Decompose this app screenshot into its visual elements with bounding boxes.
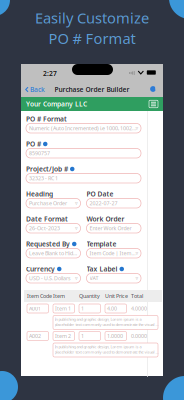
staticText: Enter Work Order xyxy=(89,225,131,232)
staticText: Template xyxy=(86,240,116,248)
staticText: PO Date xyxy=(86,190,113,198)
staticText: Numeric (Auto Incremented) i.e 1000, 100… xyxy=(29,125,135,132)
staticText: ▿ xyxy=(75,225,78,231)
button[interactable]: 32323 - RC 1 xyxy=(26,173,141,183)
staticText: 0.0000 xyxy=(131,332,147,340)
button[interactable]: Leave Blank to Hide from xyxy=(26,248,80,258)
staticText: PO # xyxy=(26,140,41,148)
staticText: Project/Job # xyxy=(26,165,68,173)
staticText: Easily Customize xyxy=(35,8,149,27)
staticText: 2:27 xyxy=(43,69,57,78)
staticText: Heading xyxy=(26,190,53,198)
staticText: ▿ xyxy=(135,250,138,256)
button[interactable]: 8590757 xyxy=(26,148,141,158)
staticText: ▿ xyxy=(75,275,78,281)
staticText: Work Order xyxy=(86,215,124,223)
staticText: A002 xyxy=(29,332,41,340)
button[interactable]: Enter Work Order xyxy=(86,223,141,233)
staticText: Item Code | Item | Quant xyxy=(89,250,135,257)
staticText: Quantity xyxy=(79,292,100,300)
button[interactable]: Purchase Order xyxy=(26,198,80,208)
staticText: 4.0000 xyxy=(131,305,147,312)
staticText: PO # Format xyxy=(48,28,135,48)
staticText: 4.00 xyxy=(107,305,117,312)
staticText: ▿ xyxy=(135,125,138,131)
staticText: 1.0000 xyxy=(107,332,123,340)
button[interactable]: Refresh xyxy=(149,85,157,93)
staticText: Tax Label xyxy=(86,265,117,273)
staticText: Total xyxy=(131,292,143,300)
staticText: 1 xyxy=(81,332,84,340)
staticText: Purchase Order xyxy=(29,200,67,207)
button[interactable]: Item Code | Item | Quant xyxy=(86,248,141,258)
staticText: In publishing and graphic design, Lorem … xyxy=(54,316,158,327)
staticText: In publishing and graphic design, Lorem … xyxy=(54,344,158,355)
staticText: 26-Oct-2023 xyxy=(29,225,60,232)
button[interactable]: Numeric (Auto Incremented) i.e 1000, 100… xyxy=(26,123,141,133)
button[interactable]: Menu xyxy=(149,100,158,108)
staticText: Purchase Order Builder xyxy=(54,85,129,94)
staticText: Unit Price xyxy=(105,292,128,300)
staticText: Item Code xyxy=(27,292,52,300)
staticText: ▿ xyxy=(135,275,138,281)
staticText: VAT xyxy=(89,275,98,282)
staticText: A001 xyxy=(29,305,41,312)
staticText: Leave Blank to Hide from xyxy=(29,250,78,257)
staticText: Requested By xyxy=(26,240,70,248)
staticText: Item 1 xyxy=(55,305,71,312)
button[interactable]: USD - U.S. Dollars xyxy=(26,273,80,283)
staticText: PO # Format xyxy=(26,115,67,123)
staticText: 8590757 xyxy=(29,150,50,157)
staticText: Item xyxy=(53,292,65,300)
staticText: 1 xyxy=(81,305,84,312)
button[interactable]: 26-Oct-2023 xyxy=(26,223,80,233)
staticText: 32323 - RC 1 xyxy=(29,175,58,182)
button[interactable]: Back xyxy=(25,85,45,94)
staticText: Back xyxy=(30,85,45,94)
staticText: Currency xyxy=(26,265,55,273)
button[interactable]: VAT xyxy=(86,273,141,283)
staticText: ▿ xyxy=(75,200,78,206)
staticText: Date Format xyxy=(26,215,68,223)
staticText: 2022-07-27 xyxy=(89,200,117,207)
staticText: Your Company LLC xyxy=(26,100,87,108)
staticText: USD - U.S. Dollars xyxy=(29,275,71,282)
staticText: Item 2 xyxy=(55,332,71,340)
button[interactable]: 2022-07-27 xyxy=(86,198,141,208)
